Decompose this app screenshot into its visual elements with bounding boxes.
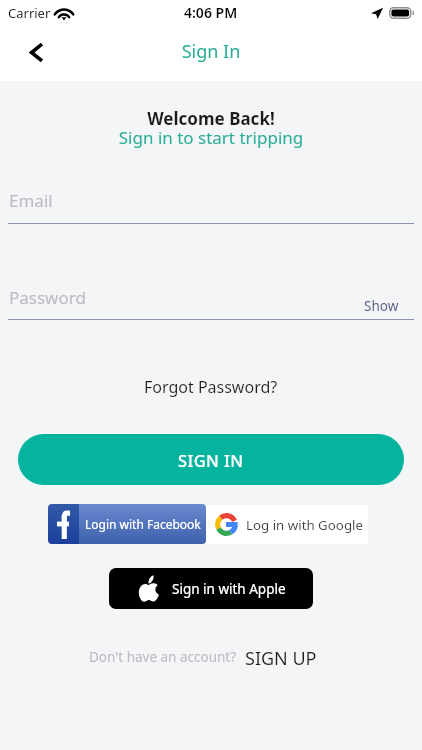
staticText: Carrier [8,4,51,22]
staticText: Sign in to start tripping [0,126,422,149]
button[interactable]: Log in with Google [206,505,368,544]
staticText: SIGN UP [245,646,317,671]
staticText: Login with Facebook [85,516,201,532]
staticText: 4:06 PM [184,3,238,22]
staticText: Password [9,286,86,309]
staticText: Sign In [0,39,422,64]
button[interactable]: Sign in with Apple [109,568,313,609]
button[interactable]: Show [364,297,399,315]
staticText: Log in with Google [246,516,363,534]
staticText: SIGN IN [178,449,244,471]
button[interactable]: SIGN UP [243,644,319,673]
staticText: Welcome Back! [0,107,422,130]
staticText: Sign in with Apple [172,580,286,598]
button[interactable]: Login with Facebook [48,504,206,544]
button[interactable]: SIGN IN [18,434,404,485]
button[interactable]: Back [16,32,56,72]
staticText: Show [364,297,399,315]
staticText: Don't have an account? [89,648,237,666]
staticText: Email [9,189,53,212]
staticText: Forgot Password? [144,376,278,398]
button[interactable]: Forgot Password? [138,374,284,400]
